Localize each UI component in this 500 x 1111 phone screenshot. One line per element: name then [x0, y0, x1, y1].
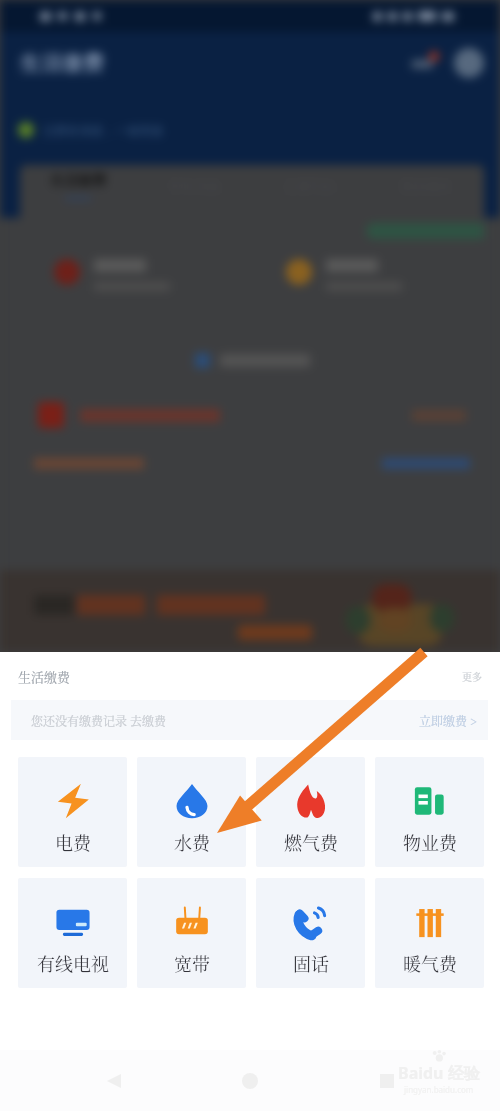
staticText: 固话 — [293, 950, 329, 976]
button[interactable]: 暖气费 — [375, 878, 484, 988]
button[interactable]: Home — [227, 1058, 273, 1104]
button[interactable]: 水费 — [137, 757, 246, 867]
staticText: 燃气费 — [284, 829, 338, 855]
staticText: 交费更便捷，一键查缴 — [43, 123, 163, 138]
button[interactable]: 生活缴费 — [20, 165, 136, 207]
button[interactable]: 更多服务 — [368, 165, 484, 207]
staticText: 宽带 — [174, 950, 210, 976]
staticText: 生活缴费 — [50, 172, 106, 190]
staticText: 您还没有缴费记录 去缴费 — [31, 712, 167, 729]
staticText: 物业费 — [403, 829, 457, 855]
button[interactable] — [454, 48, 484, 78]
staticText: 生活缴费 — [18, 667, 71, 686]
button[interactable]: 物业费 — [375, 757, 484, 867]
staticText: jingyan.baidu.com — [404, 1084, 474, 1095]
staticText: Baidu 经验 — [398, 1062, 480, 1084]
button[interactable]: Recents — [364, 1058, 410, 1104]
button[interactable]: Messages — [410, 48, 440, 78]
staticText: 水费 — [174, 829, 210, 855]
staticText: 电费 — [55, 829, 91, 855]
button[interactable]: 您还没有缴费记录 去缴费 — [11, 700, 488, 740]
staticText: 更多 — [462, 669, 482, 683]
button[interactable]: 手机充值 — [136, 165, 252, 207]
button[interactable] — [366, 223, 484, 239]
button[interactable]: 交通罚款 — [252, 165, 368, 207]
button[interactable]: 电费 — [18, 757, 127, 867]
button[interactable]: 更多 — [458, 665, 486, 687]
button[interactable]: 燃气费 — [256, 757, 365, 867]
staticText: 暖气费 — [403, 950, 457, 976]
button[interactable]: 宽带 — [137, 878, 246, 988]
staticText: 生活缴费 — [20, 50, 104, 76]
staticText: 立即缴费 > — [419, 712, 478, 729]
staticText: 有线电视 — [37, 950, 109, 976]
button[interactable]: 有线电视 — [18, 878, 127, 988]
button[interactable]: 固话 — [256, 878, 365, 988]
